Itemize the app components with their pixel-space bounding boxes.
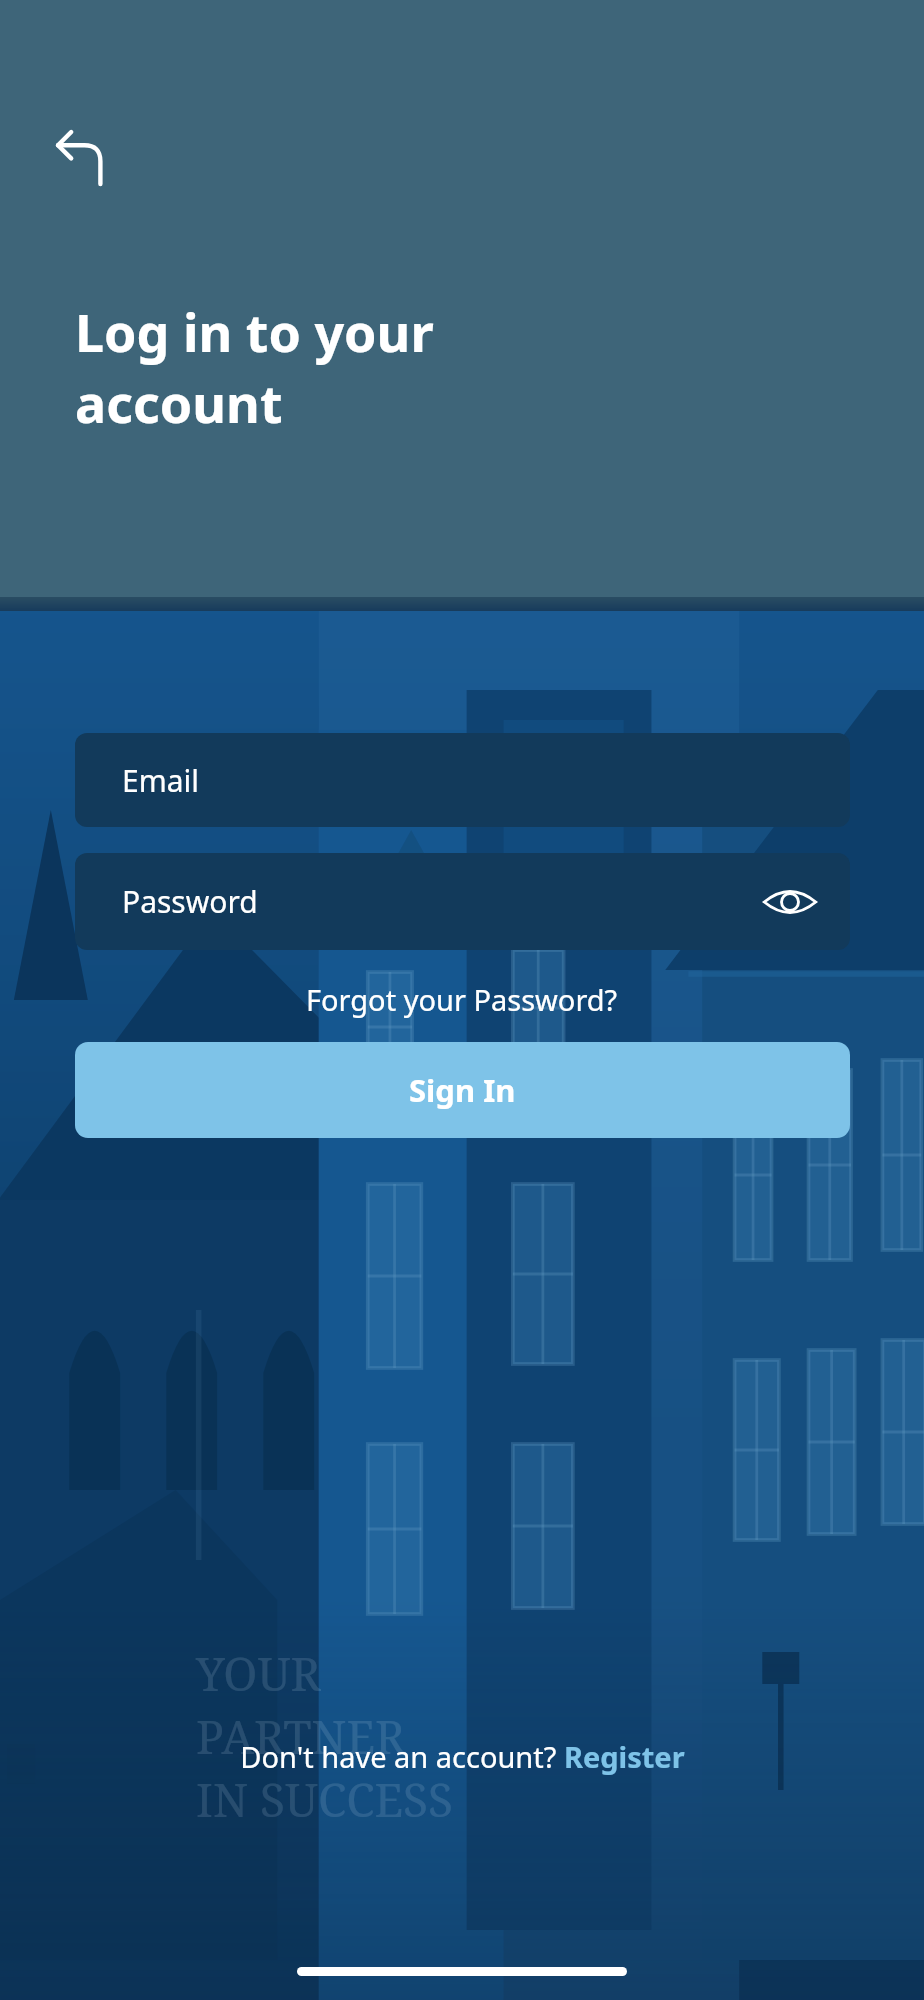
button[interactable]: Sign In <box>75 1042 850 1138</box>
staticText: account <box>75 367 283 438</box>
button[interactable]: Show password <box>740 853 840 950</box>
staticText: Log in to your <box>75 296 434 367</box>
staticText: Sign In <box>409 1069 516 1111</box>
staticText: IN SUCCESS <box>196 1768 454 1831</box>
button[interactable]: Email <box>75 733 850 827</box>
staticText: Don't have an account? Register <box>240 1737 685 1776</box>
button[interactable]: Forgot your Password? <box>0 972 924 1026</box>
staticText: YOUR <box>196 1642 321 1705</box>
staticText: Forgot your Password? <box>306 980 618 1019</box>
button[interactable]: Password <box>75 853 850 950</box>
button[interactable]: Back <box>40 108 120 188</box>
staticText: Email <box>122 760 200 801</box>
staticText: PARTNER <box>196 1705 406 1768</box>
button[interactable]: Don't have an account? Register <box>0 1728 924 1784</box>
staticText: Password <box>122 881 258 922</box>
